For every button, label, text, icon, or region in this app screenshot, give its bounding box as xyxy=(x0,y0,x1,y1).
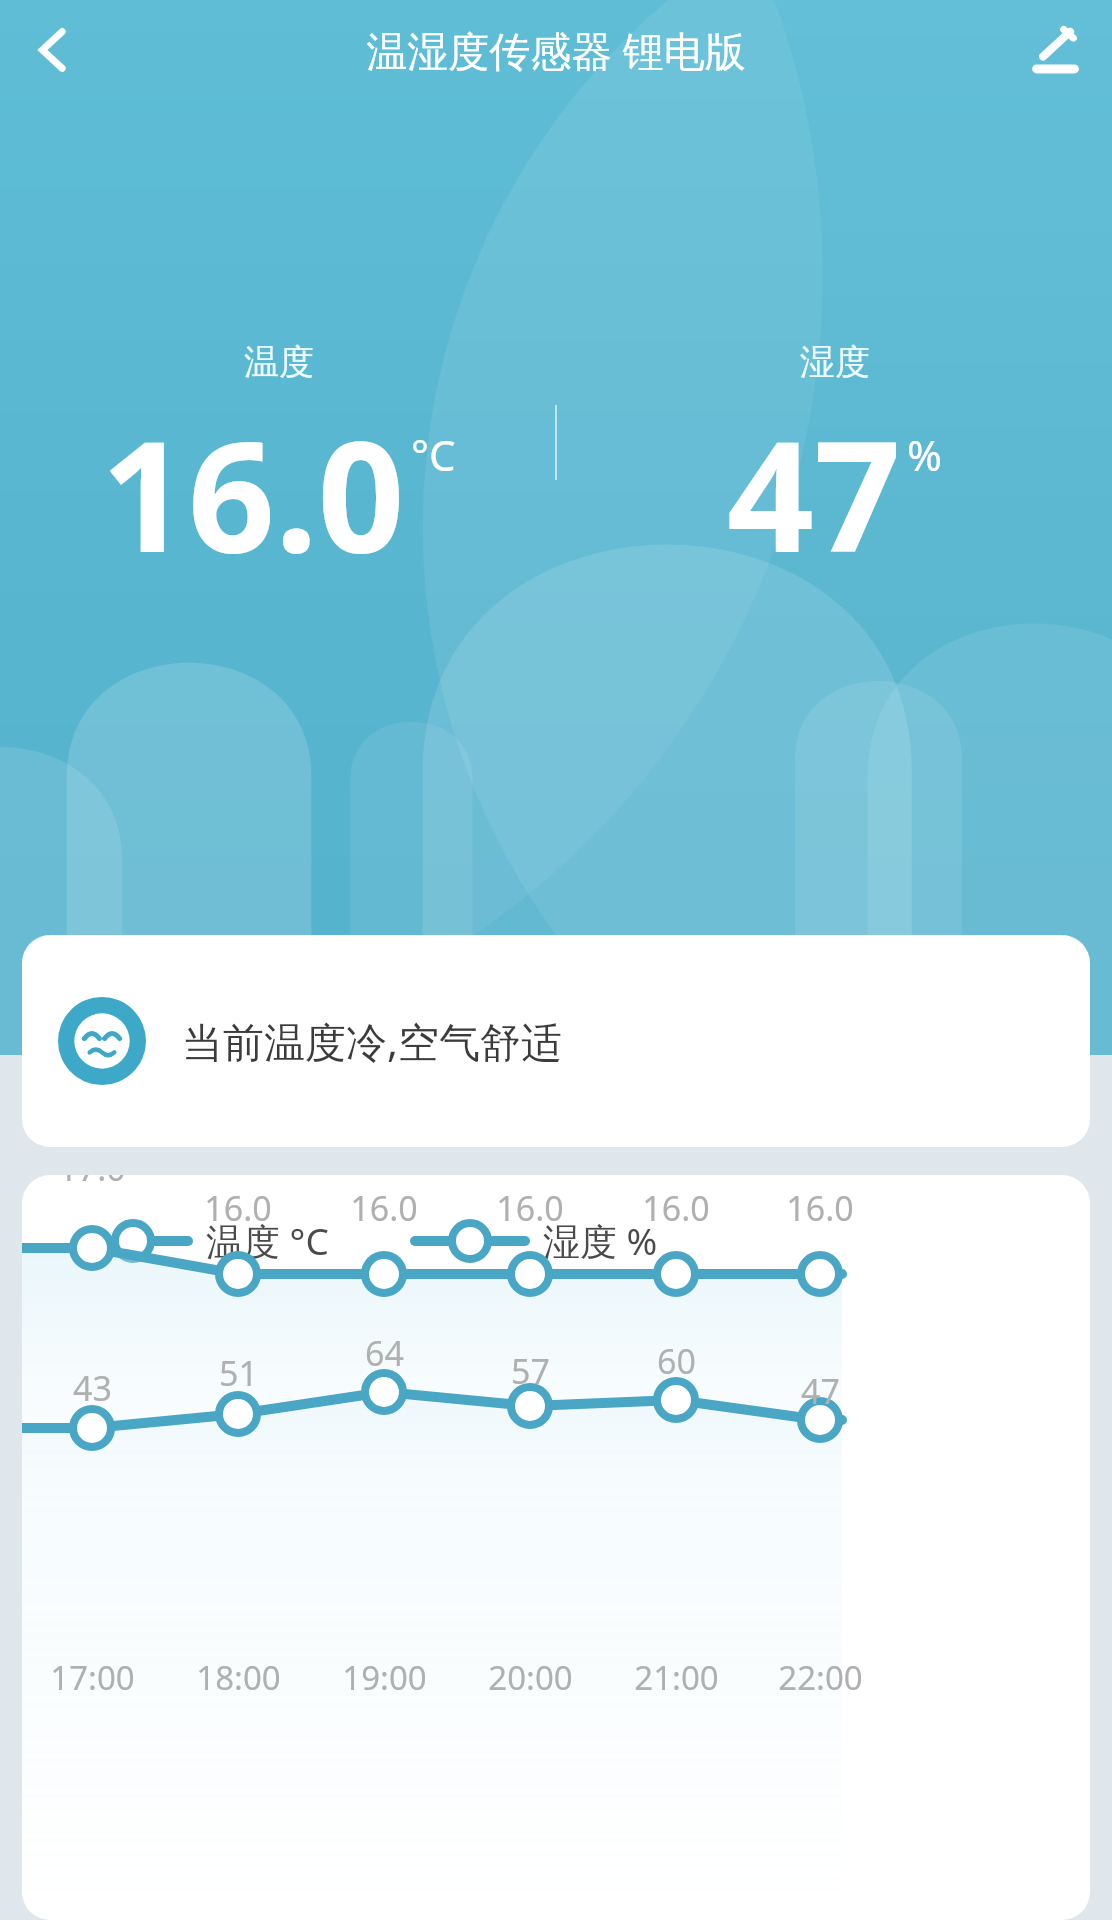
staticText: 湿度 xyxy=(800,340,870,384)
staticText: 当前温度冷,空气舒适 xyxy=(182,1013,562,1069)
staticText: 16.0 xyxy=(642,1185,710,1231)
button[interactable]: 当前温度冷,空气舒适 xyxy=(22,935,1090,1147)
staticText: 17.0 xyxy=(58,1175,126,1191)
button[interactable]: 温度 °C xyxy=(78,1215,329,1266)
staticText: 20:00 xyxy=(488,1655,573,1700)
staticText: 18:00 xyxy=(196,1655,281,1700)
staticText: 43 xyxy=(73,1365,112,1411)
staticText: 湿度 % xyxy=(543,1215,658,1266)
staticText: 温度 °C xyxy=(206,1215,329,1266)
staticText: 16.0 xyxy=(350,1185,418,1231)
button[interactable]: 湿度 % xyxy=(415,1215,658,1266)
staticText: 16.0 xyxy=(204,1185,272,1231)
staticText: 温度 xyxy=(244,340,314,384)
staticText: 16.0 xyxy=(101,390,405,597)
staticText: 19:00 xyxy=(342,1655,427,1700)
button[interactable]: Edit xyxy=(1010,5,1100,95)
staticText: 51 xyxy=(219,1350,258,1396)
staticText: 47 xyxy=(801,1368,840,1414)
staticText: 17:00 xyxy=(50,1655,135,1700)
staticText: 21:00 xyxy=(634,1655,719,1700)
staticText: 60 xyxy=(657,1338,696,1384)
staticText: 64 xyxy=(365,1330,404,1376)
staticText: 57 xyxy=(511,1348,550,1394)
staticText: % xyxy=(907,426,942,483)
button[interactable]: Back xyxy=(8,5,98,95)
staticText: 22:00 xyxy=(778,1655,863,1700)
staticText: 16.0 xyxy=(786,1185,854,1231)
staticText: 温湿度传感器 锂电版 xyxy=(366,22,746,78)
staticText: 16.0 xyxy=(496,1185,564,1231)
staticText: 47 xyxy=(727,390,901,597)
staticText: °C xyxy=(411,426,456,483)
